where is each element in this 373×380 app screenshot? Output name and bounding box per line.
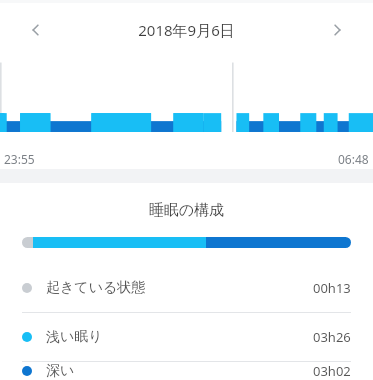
button[interactable]: Next day	[317, 10, 357, 50]
staticText: 06:48	[338, 151, 369, 167]
staticText: 03h26	[313, 328, 351, 346]
staticText: 00h13	[313, 279, 351, 297]
button[interactable]: Previous day	[16, 10, 56, 50]
button[interactable]: 浅い眠り	[0, 313, 373, 361]
staticText: 2018年9月6日	[138, 20, 235, 40]
staticText: 23:55	[4, 151, 35, 167]
staticText: 睡眠の構成	[0, 201, 373, 220]
staticText: 起きている状態	[46, 279, 146, 297]
staticText: 03h02	[313, 362, 351, 380]
button[interactable]: 深い	[0, 362, 373, 380]
staticText: 深い	[46, 362, 75, 380]
button[interactable]: 起きている状態	[0, 264, 373, 312]
staticText: 浅い眠り	[46, 328, 103, 346]
